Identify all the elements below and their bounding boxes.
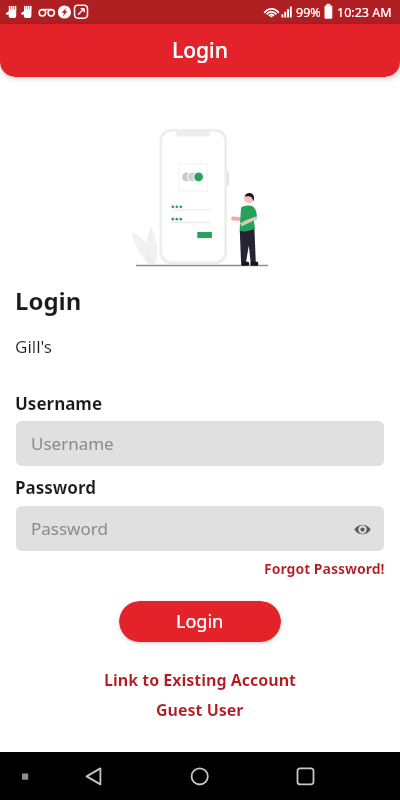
staticText: Password	[15, 476, 96, 499]
staticText: Forgot Password!	[264, 559, 385, 578]
staticText: Username	[15, 392, 103, 415]
button[interactable]: Show password	[350, 517, 374, 541]
staticText: 10:23 AM	[337, 4, 392, 21]
staticText: 99%	[296, 4, 321, 21]
staticText: Password	[31, 517, 108, 540]
staticText: Username	[31, 432, 114, 455]
button[interactable]: Username	[16, 421, 384, 466]
staticText: Link to Existing Account	[104, 669, 297, 691]
button[interactable]: Login	[119, 601, 281, 642]
staticText: Login	[176, 609, 224, 634]
button[interactable]: Link to Existing Account	[104, 669, 297, 691]
button[interactable]: Guest User	[156, 699, 244, 721]
staticText: Gill's	[15, 335, 52, 358]
button[interactable]: Login	[0, 24, 400, 77]
button[interactable]: Password	[16, 506, 384, 551]
button: Login	[15, 284, 82, 317]
staticText: Login	[15, 284, 82, 317]
staticText: Guest User	[156, 699, 244, 721]
staticText: Login	[172, 36, 228, 65]
button[interactable]: Forgot Password!	[264, 559, 385, 578]
